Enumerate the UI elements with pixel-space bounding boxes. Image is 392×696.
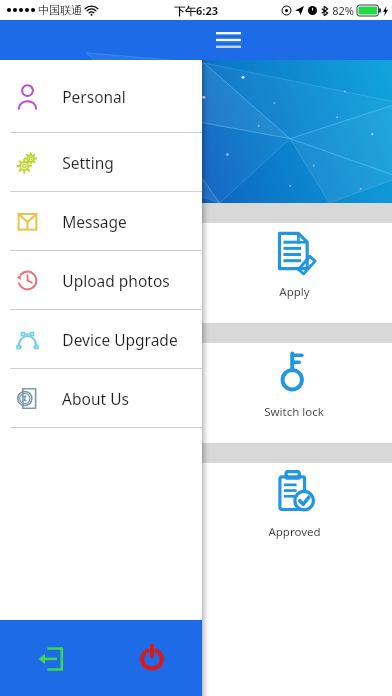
button[interactable]: Log out [0,620,101,696]
staticText: Personal [62,86,126,107]
staticText: Valid [85,284,112,300]
staticText: My Authorization [10,205,103,221]
staticText: LockInfo [75,404,122,420]
button[interactable]: Message [0,192,202,250]
button[interactable]: LockInfo [0,343,196,443]
button[interactable]: Upload photos [0,251,202,309]
button[interactable]: Personal [0,60,202,132]
button[interactable]: Lock [19,99,85,165]
staticText: Hardware [10,325,64,341]
staticText: 82% [332,3,354,18]
button[interactable]: Open navigation menu [206,20,250,60]
staticText: Apply [279,284,310,300]
button[interactable]: Switch lock [196,343,392,443]
button[interactable]: Setting [0,133,202,191]
button[interactable]: Valid [0,223,196,323]
button[interactable]: Apply [196,223,392,323]
staticText: Message [62,211,127,232]
staticText: Approved [268,524,321,540]
button[interactable]: Power off [101,620,202,696]
button[interactable]: About Us [0,369,202,427]
staticText: Setting [62,152,114,173]
staticText: 中国联通 [38,3,82,17]
button[interactable]: Approved [196,463,392,563]
staticText: Switch lock [264,404,324,420]
staticText: Lock [36,122,69,142]
staticText: Upload photos [62,270,170,291]
button[interactable]: Device Upgrade [0,310,202,368]
staticText: About Us [62,388,129,409]
staticText: Device Upgrade [62,329,178,350]
staticText: 下午6:23 [174,3,218,18]
